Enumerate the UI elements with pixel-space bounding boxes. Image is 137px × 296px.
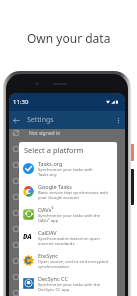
staticText: CalDAV — [38, 229, 57, 236]
staticText: Google Tasks — [38, 183, 72, 190]
button[interactable]: DAVx⁵ — [19, 203, 117, 226]
staticText: Basic service that synchronizes with you… — [38, 190, 110, 200]
staticText: Select a platform — [24, 145, 84, 155]
staticText: Synchronize your tasks with the DAVx⁵ ap… — [38, 213, 110, 223]
staticText: 11:30 — [13, 98, 29, 106]
staticText: Appearance — [29, 162, 58, 169]
button[interactable]: Navigation drawer — [9, 205, 125, 221]
staticText: DecSync CC — [38, 275, 68, 282]
button[interactable]: Not signed in — [9, 125, 125, 141]
staticText: Widget — [29, 226, 46, 233]
staticText: Synchronization based on open internet s… — [38, 236, 110, 246]
button[interactable]: Advanced — [9, 269, 125, 285]
staticText: Own your data — [27, 30, 111, 46]
button[interactable]: More options — [111, 113, 125, 127]
staticText: Backup — [29, 258, 47, 265]
button[interactable]: Backup — [9, 253, 125, 269]
button[interactable]: EteSync — [19, 249, 117, 272]
staticText: Not signed in — [29, 130, 61, 137]
staticText: Notifications — [29, 194, 59, 201]
button[interactable]: Widget — [9, 221, 125, 237]
button[interactable]: Synchronization — [9, 237, 125, 253]
staticText: Navigation drawer — [29, 210, 73, 217]
staticText: Synchronize your tasks with Tasks.org — [38, 167, 110, 177]
button[interactable]: DecSync CC — [19, 272, 117, 295]
staticText: DAVx⁵ — [38, 206, 54, 213]
staticText: Synchronization — [29, 242, 67, 249]
staticText: Open source, end-to-end encrypted synchr… — [38, 259, 110, 269]
staticText: Settings — [27, 115, 54, 125]
button[interactable]: Navigate up — [9, 113, 23, 127]
button[interactable]: General — [9, 141, 125, 157]
staticText: General — [29, 146, 48, 153]
button[interactable]: DAV — [19, 226, 117, 249]
button[interactable]: Google Tasks — [19, 180, 117, 203]
staticText: Tasks.org — [38, 160, 63, 167]
button[interactable]: Appearance — [9, 157, 125, 173]
button[interactable]: Tasks.org — [19, 157, 117, 180]
staticText: Synchronize your tasks with the DecSync … — [38, 282, 110, 292]
button[interactable]: Help & feedback — [9, 285, 125, 296]
staticText: EteSync — [38, 252, 59, 259]
staticText: DAV — [23, 232, 34, 243]
staticText: Advanced — [29, 274, 53, 281]
staticText: Help & feedback — [29, 290, 68, 296]
button[interactable]: Notifications — [9, 189, 125, 205]
button[interactable]: Date and time — [9, 173, 125, 189]
